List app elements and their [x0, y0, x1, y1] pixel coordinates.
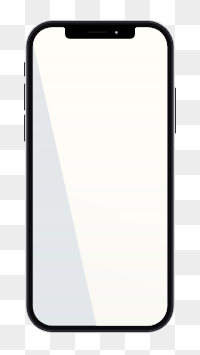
button[interactable]: Smartphone device mockup — [0, 0, 200, 355]
